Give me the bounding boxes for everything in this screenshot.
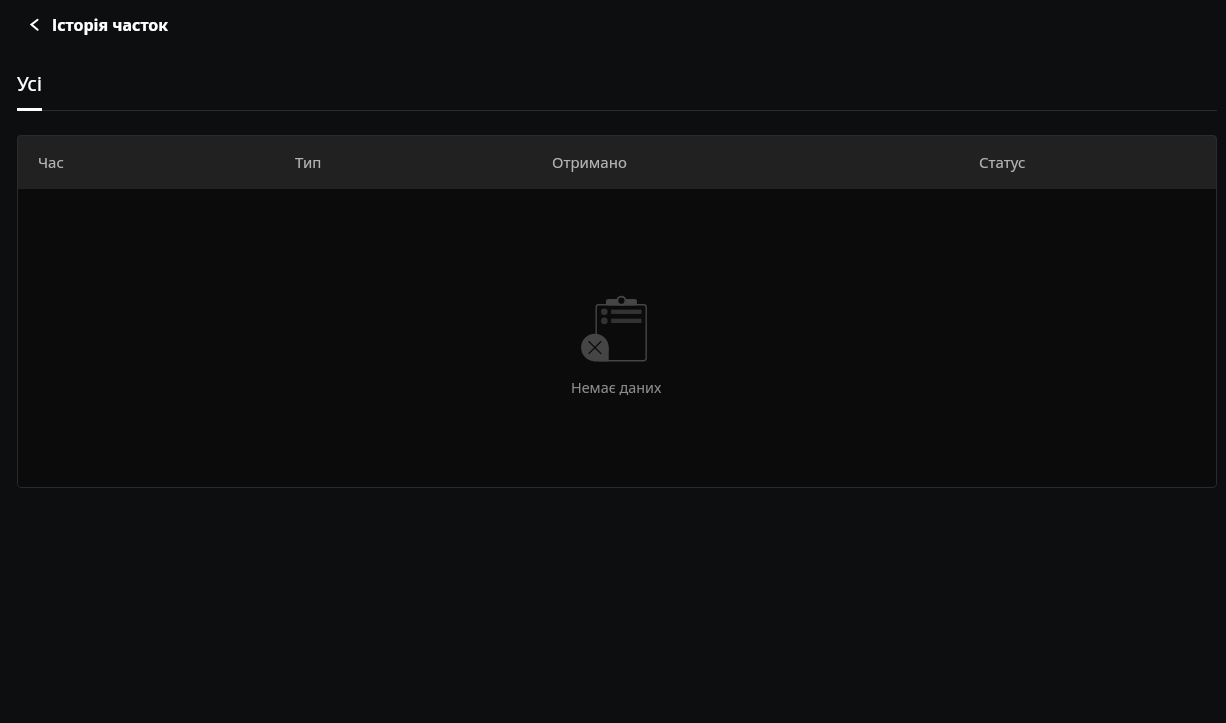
staticText: Тип bbox=[295, 152, 322, 172]
staticText: Час bbox=[38, 152, 64, 172]
button[interactable]: Усі bbox=[17, 65, 42, 111]
button[interactable]: Час bbox=[17, 135, 274, 189]
button[interactable]: Back bbox=[23, 13, 47, 37]
staticText: Отримано bbox=[552, 152, 627, 172]
button[interactable]: Статус bbox=[958, 135, 1217, 189]
staticText: Усі bbox=[17, 71, 42, 97]
button[interactable]: Отримано bbox=[531, 135, 958, 189]
button[interactable]: Тип bbox=[274, 135, 531, 189]
staticText: Немає даних bbox=[571, 378, 662, 398]
staticText: Статус bbox=[979, 152, 1026, 172]
staticText: Історія часток bbox=[52, 14, 169, 36]
